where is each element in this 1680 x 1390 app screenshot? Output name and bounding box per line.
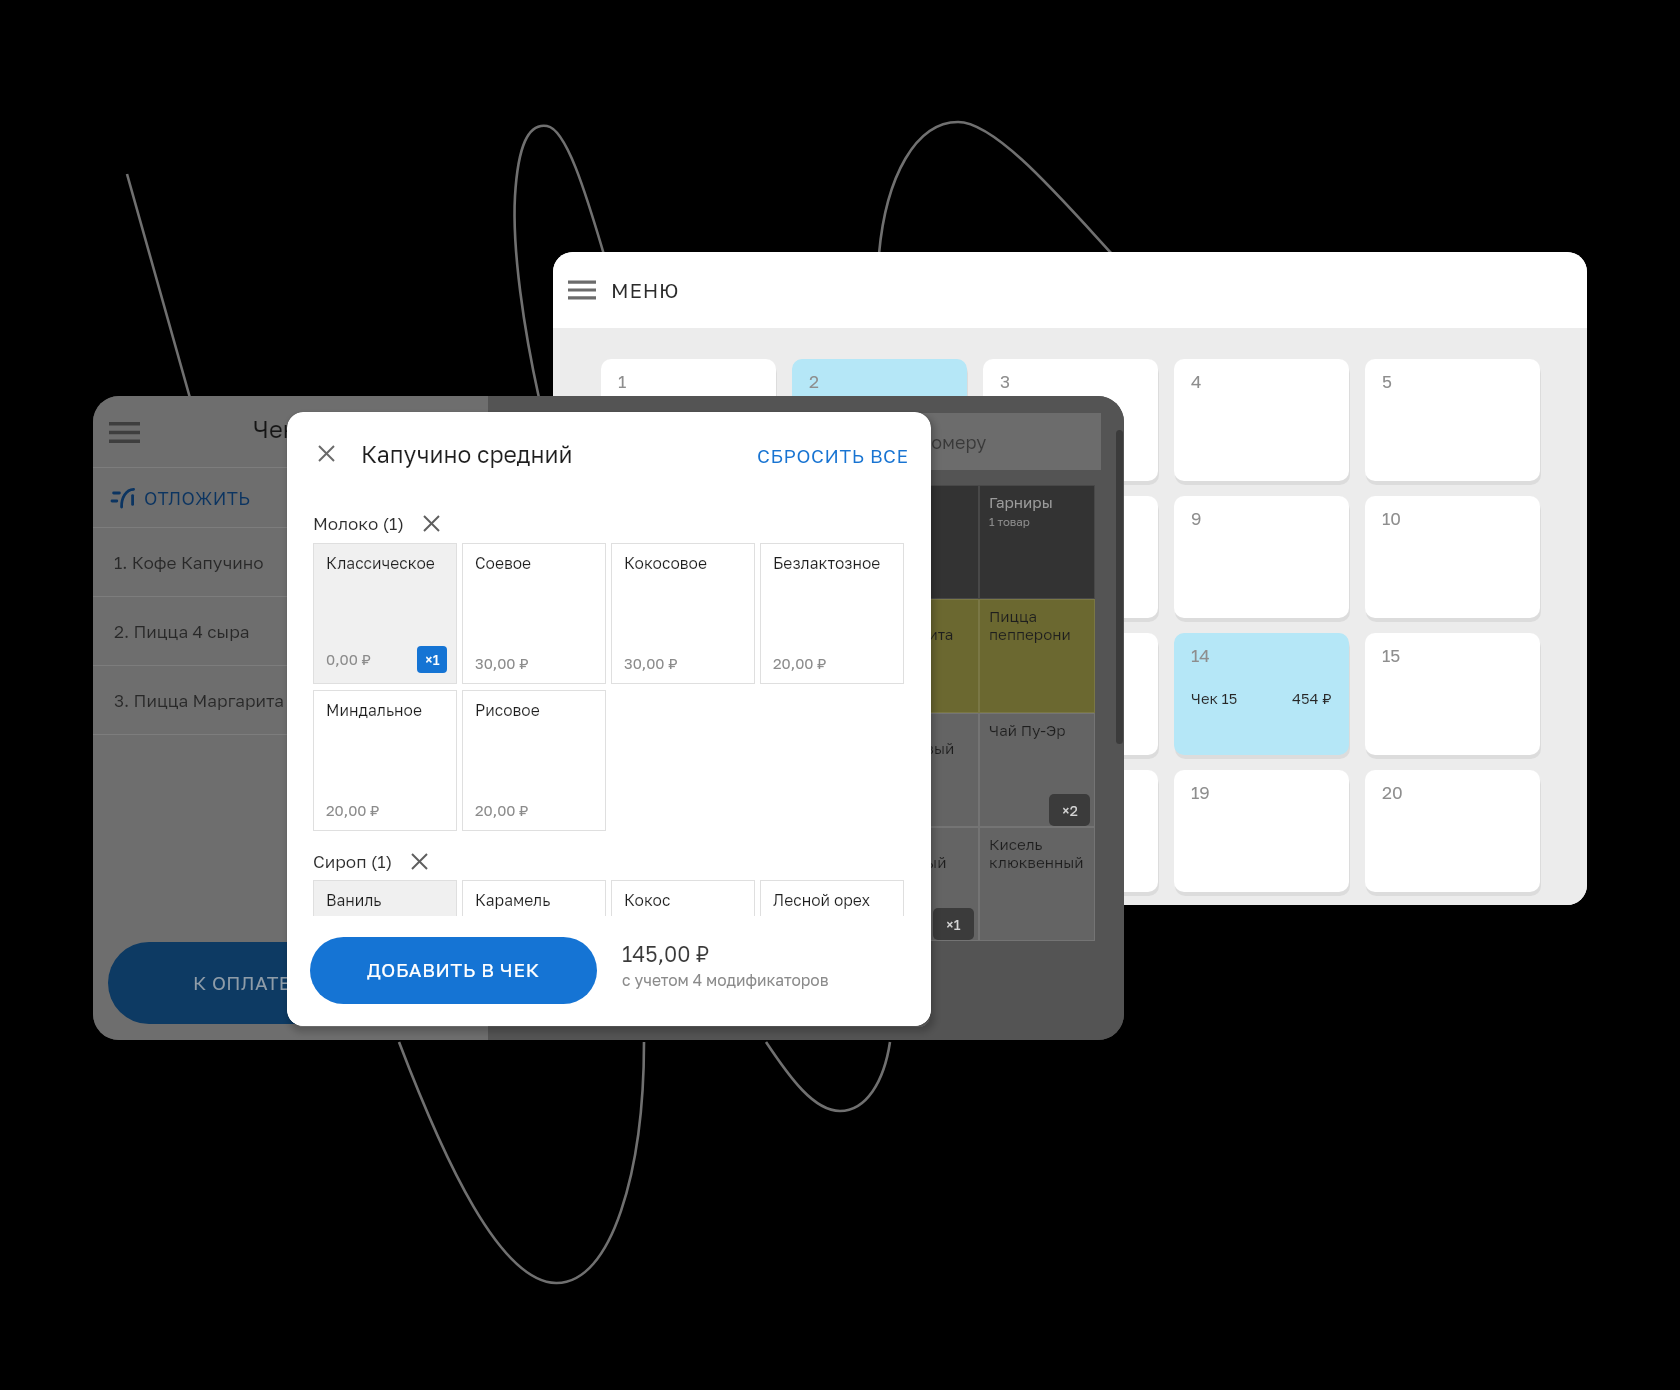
button[interactable]: 7	[792, 496, 967, 618]
button[interactable]: К ОПЛАТЕ	[108, 942, 426, 1024]
button[interactable]: ОТЛОЖИТЬ	[93, 468, 488, 527]
button[interactable]: Соус сырный	[747, 827, 863, 941]
button[interactable]: 16	[601, 770, 776, 892]
button[interactable]: 9	[1174, 496, 1349, 618]
button[interactable]: 13	[983, 633, 1158, 755]
staticText: Молоко (1)	[313, 513, 405, 534]
staticText: Пицца 4 сыра	[525, 607, 625, 644]
staticText: 30,00 ₽	[624, 655, 678, 673]
button[interactable]: Поиск по номеру	[502, 413, 1101, 470]
button[interactable]: 6	[601, 496, 776, 618]
button[interactable]: Пицца Маргарита	[863, 599, 979, 713]
button[interactable]: Пицца 4 сыра	[515, 599, 631, 713]
button[interactable]: Пицца	[747, 485, 863, 599]
button[interactable]: Картофель фри	[631, 827, 747, 941]
button[interactable]: 1. Кофе Капучино	[93, 528, 488, 596]
button[interactable]: Пицца Ветчина	[631, 599, 747, 713]
staticText: Кокос	[624, 891, 671, 910]
button[interactable]: 18	[983, 770, 1158, 892]
staticText: 5	[1382, 371, 1392, 392]
button[interactable]: 19	[1174, 770, 1349, 892]
staticText: 145,00 ₽	[622, 941, 710, 967]
button[interactable]: Раф кокосовый	[863, 713, 979, 827]
button[interactable]: Лесной орех	[760, 880, 904, 1021]
staticText: Раф кокосовый	[873, 721, 973, 758]
staticText: 30,00 ₽	[475, 655, 529, 673]
button[interactable]: Пицца пепперони	[979, 599, 1095, 713]
staticText: ОТЛОЖИТЬ	[144, 487, 251, 509]
staticText: 1 товар	[989, 515, 1030, 529]
button[interactable]: 4	[1174, 359, 1349, 481]
button[interactable]: Американо	[515, 713, 631, 827]
button[interactable]: Брауни	[515, 827, 631, 941]
staticText: ×1	[946, 916, 961, 933]
staticText: Лесной орех	[773, 891, 871, 910]
button[interactable]: Гарниры	[979, 485, 1095, 599]
button[interactable]: Напитки	[515, 485, 631, 599]
button[interactable]: Ваниль	[313, 880, 457, 1021]
staticText: Миндальное	[326, 701, 422, 720]
staticText: Кокосовое	[624, 554, 707, 573]
staticText: Безлактозное	[773, 554, 881, 573]
staticText: К ОПЛАТЕ	[193, 972, 291, 995]
button[interactable]: Clear group	[401, 843, 437, 879]
button[interactable]: Безлактозное	[760, 543, 904, 684]
staticText: 15	[1382, 645, 1401, 666]
button[interactable]: Карамель	[462, 880, 606, 1021]
staticText: 20,00 ₽	[475, 802, 529, 820]
button[interactable]: Close	[302, 429, 350, 477]
staticText: 3	[1000, 371, 1011, 392]
button[interactable]: Чай Пу-Эр	[979, 713, 1095, 827]
staticText: Чай Пу-Эр	[989, 721, 1066, 739]
button[interactable]: Кисель клюквенный	[979, 827, 1095, 941]
button[interactable]: Menu	[96, 404, 152, 460]
button[interactable]: 5	[1365, 359, 1540, 481]
staticText: 4	[1191, 371, 1202, 392]
button[interactable]: Рисовое	[462, 690, 606, 831]
button[interactable]: 3	[983, 359, 1158, 481]
button[interactable]: Компот яблочный	[863, 827, 979, 941]
button[interactable]: Соевое	[462, 543, 606, 684]
staticText: Рисовое	[475, 701, 540, 720]
button[interactable]: Салаты	[863, 485, 979, 599]
staticText: Ваниль	[326, 891, 382, 910]
staticText: 20,00 ₽	[326, 802, 380, 820]
button[interactable]: Кокос	[611, 880, 755, 1021]
button[interactable]: 10	[1365, 496, 1540, 618]
staticText: 3. Пицца Маргарита	[114, 690, 284, 711]
staticText: 454 ₽	[1292, 690, 1332, 708]
staticText: 12	[809, 645, 828, 666]
button[interactable]: 15	[1365, 633, 1540, 755]
button[interactable]: 14	[1174, 633, 1349, 755]
staticText: Чек 15	[253, 415, 328, 444]
button[interactable]: Clear group	[413, 505, 449, 541]
staticText: ×2	[1062, 802, 1078, 819]
button[interactable]: 2	[792, 359, 967, 481]
staticText: 1. Кофе Капучино	[114, 552, 264, 573]
button[interactable]: 8	[983, 496, 1158, 618]
button[interactable]: 3. Пицца Маргарита	[93, 666, 488, 734]
button[interactable]: 20	[1365, 770, 1540, 892]
button[interactable]: 2. Пицца 4 сыра	[93, 597, 488, 665]
button[interactable]: Десерты	[631, 485, 747, 599]
button[interactable]: 11	[601, 633, 776, 755]
button[interactable]: Кокосовое	[611, 543, 755, 684]
button[interactable]: СБРОСИТЬ ВСЕ	[735, 433, 931, 480]
staticText: 0,00 ₽	[326, 651, 371, 669]
button[interactable]: Пицца Гавайская	[747, 599, 863, 713]
button[interactable]: Menu	[554, 262, 610, 318]
staticText: ×1	[425, 651, 440, 668]
button[interactable]: Классическое	[313, 543, 457, 684]
button[interactable]: 12	[792, 633, 967, 755]
button[interactable]: 1	[601, 359, 776, 481]
button[interactable]: ДОБАВИТЬ В ЧЕК	[310, 937, 597, 1004]
button[interactable]: Миндальное	[313, 690, 457, 831]
button[interactable]: 17	[792, 770, 967, 892]
